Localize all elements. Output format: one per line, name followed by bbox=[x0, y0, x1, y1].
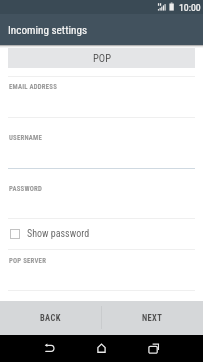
button[interactable]: NEXT bbox=[101, 301, 203, 335]
staticText: PASSWORD bbox=[9, 185, 43, 193]
button[interactable]: Home bbox=[89, 335, 114, 362]
button[interactable]: Show password bbox=[10, 219, 203, 249]
staticText: Show password bbox=[27, 228, 90, 240]
staticText: USERNAME bbox=[9, 134, 43, 142]
staticText: POP bbox=[93, 52, 111, 64]
staticText: POP SERVER bbox=[9, 257, 47, 265]
button[interactable]: POP bbox=[8, 48, 195, 68]
staticText: BACK bbox=[40, 313, 61, 323]
button[interactable]: BACK bbox=[0, 301, 101, 335]
staticText: EMAIL ADDRESS bbox=[9, 83, 58, 91]
staticText: NEXT bbox=[142, 313, 163, 323]
button[interactable]: Recent apps bbox=[141, 335, 166, 362]
staticText: 10:00 bbox=[179, 3, 201, 13]
button[interactable]: Back bbox=[38, 335, 63, 362]
staticText: Incoming settings bbox=[8, 24, 88, 37]
